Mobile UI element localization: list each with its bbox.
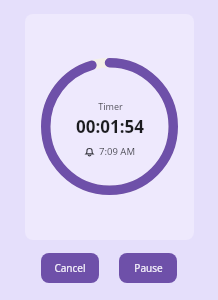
staticText: Cancel: [54, 261, 86, 275]
staticText: 7:09 AM: [99, 145, 136, 158]
staticText: Pause: [134, 261, 163, 275]
button[interactable]: Cancel: [41, 253, 99, 283]
staticText: Timer: [98, 100, 123, 112]
other: Alarm: [84, 146, 95, 157]
staticText: 00:01:54: [76, 115, 144, 138]
button[interactable]: Pause: [119, 253, 177, 283]
